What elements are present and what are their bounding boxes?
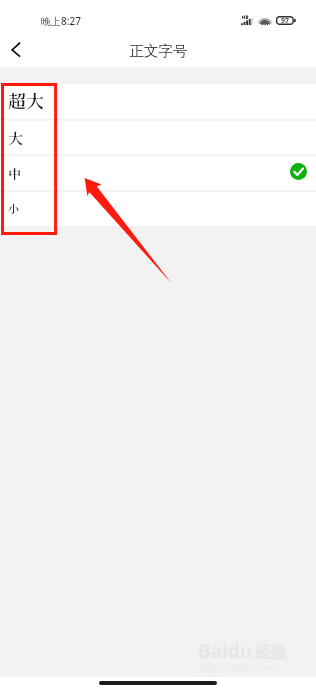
button[interactable]: 超大 — [0, 84, 316, 119]
staticText: 超大 — [8, 87, 44, 113]
staticText: 正文字号 — [129, 42, 188, 60]
staticText: 中 — [8, 164, 22, 183]
button[interactable]: Back — [0, 36, 31, 67]
staticText: 晚上8:27 — [41, 14, 81, 28]
staticText: 大 — [8, 127, 24, 149]
button[interactable]: 大 — [0, 119, 316, 154]
staticText: Baidu — [198, 638, 253, 664]
staticText: 小 — [8, 200, 19, 216]
button[interactable]: 小 — [0, 189, 316, 224]
staticText: 97 — [281, 16, 290, 25]
staticText: 经验 — [255, 643, 287, 663]
button[interactable]: 中 — [0, 154, 316, 189]
